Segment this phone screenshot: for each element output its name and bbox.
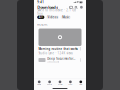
button[interactable]: Deep focus mix for study [34,55,86,65]
staticText: Videos [47,15,57,19]
staticText: Recent [37,23,47,26]
staticText: Create [57,84,62,85]
button[interactable]: Videos [46,15,59,19]
button[interactable]: Account [80,6,83,9]
button[interactable]: Search [75,6,78,9]
staticText: Studio Lane · 124K views [38,51,72,55]
staticText: 9:41 [37,0,44,4]
button[interactable]: Home [34,79,44,87]
button[interactable]: All [37,15,44,19]
staticText: Home [37,84,41,85]
button[interactable]: Morning routine that works [34,28,86,55]
staticText: Morning routine that works [38,47,77,51]
staticText: Music [62,15,69,19]
staticText: You [79,84,82,85]
staticText: Lo-fi Rooms · 58 min [47,61,59,63]
staticText: Saved to this device · 2.1 GB free [37,8,76,16]
button[interactable]: Music [61,15,71,19]
button[interactable]: Subs [65,79,76,87]
button[interactable]: Cast [70,6,72,8]
button[interactable]: Shorts [44,79,55,87]
button[interactable]: You [76,79,86,87]
staticText: All [39,15,43,19]
staticText: Shorts [47,84,52,85]
staticText: Deep focus mix for study [47,57,75,60]
staticText: Subs [68,84,72,85]
button[interactable]: Create [55,79,65,87]
staticText: Downloads [37,5,58,10]
